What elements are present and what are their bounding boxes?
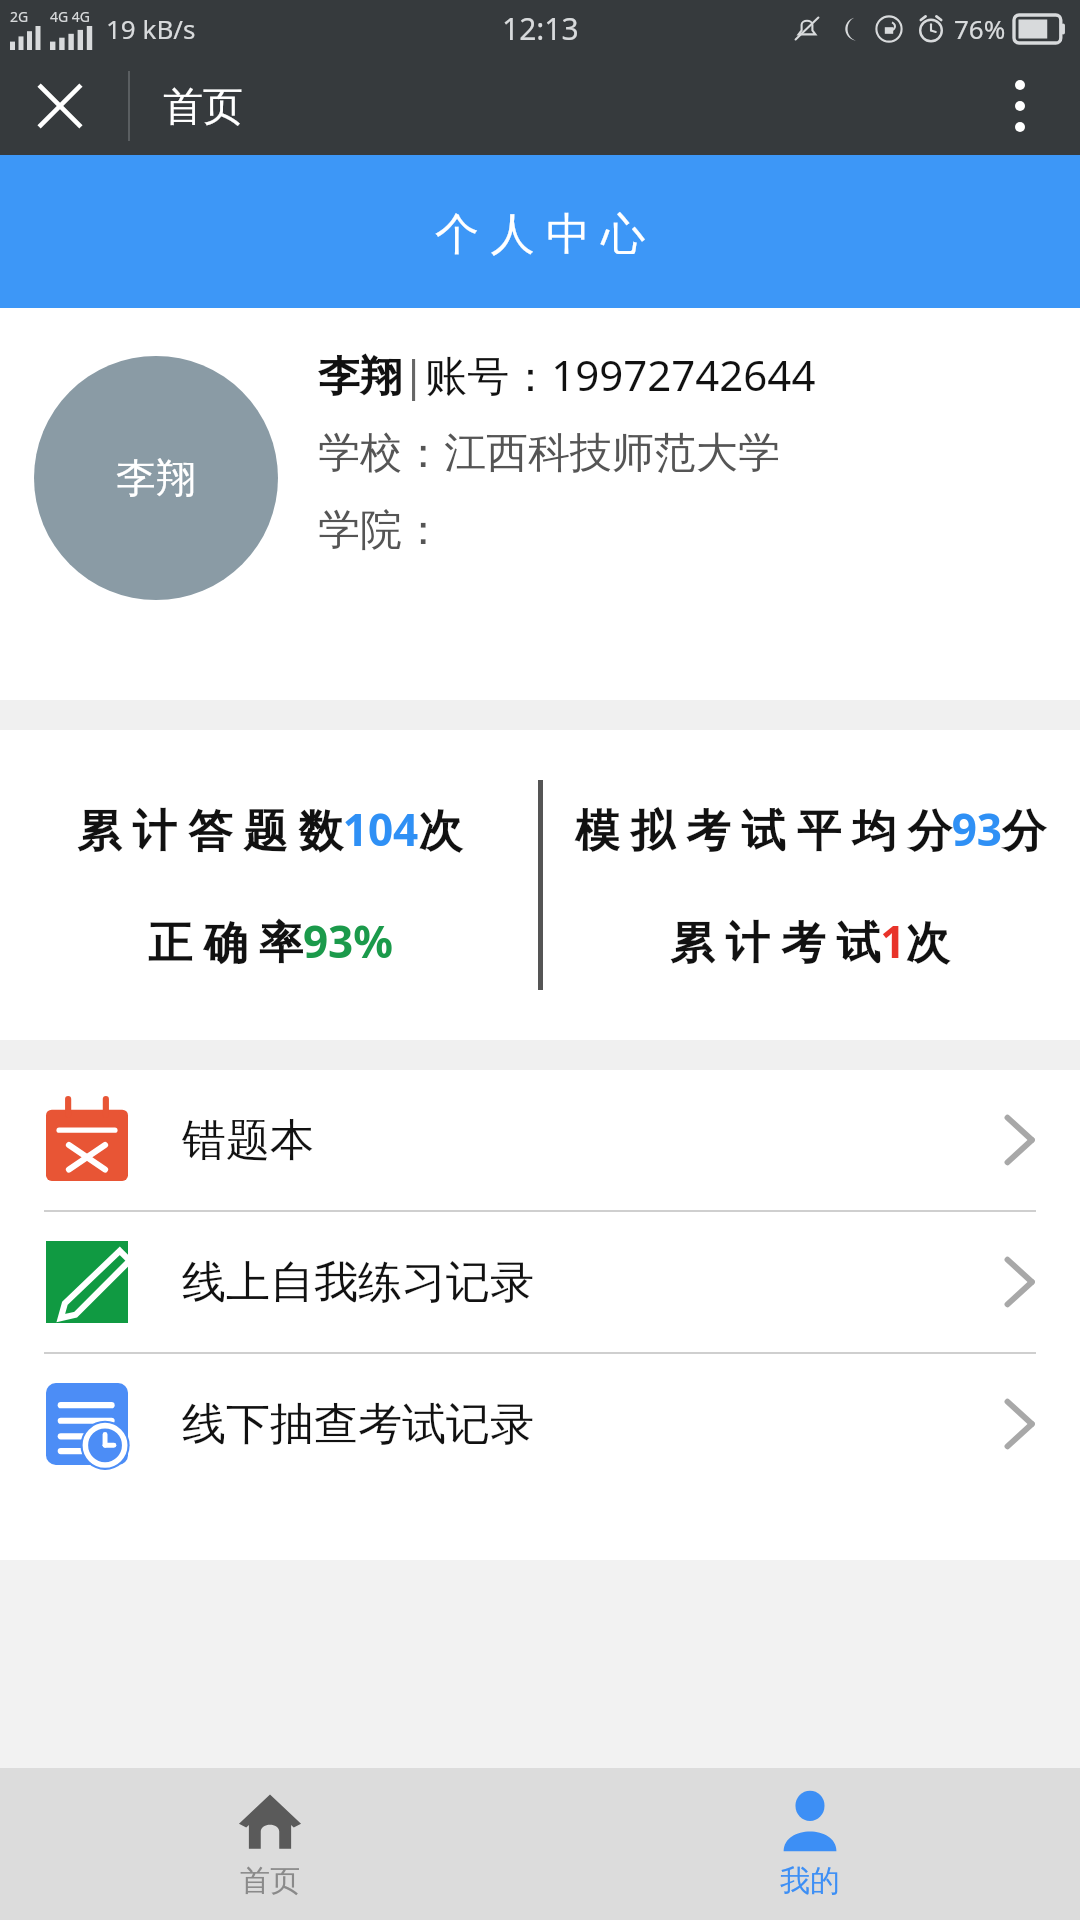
staticText: 线下抽查考试记录 (182, 1397, 534, 1452)
staticText: 正 确 率93% (148, 911, 393, 971)
staticText: 19 kB/s (106, 11, 196, 46)
staticText: 首页 (240, 1862, 300, 1900)
staticText: 累 计 考 试1次 (670, 911, 950, 971)
staticText: 12:13 (502, 8, 579, 49)
staticText: 学校：江西科技师范大学 (318, 427, 780, 480)
button[interactable]: 错题本 (0, 1070, 1080, 1210)
staticText: 李翔|账号：19972742644 (318, 346, 816, 403)
staticText: 线上自我练习记录 (182, 1255, 534, 1310)
staticText: 学院： (318, 504, 444, 557)
button[interactable]: More options (980, 66, 1060, 146)
button[interactable]: 李翔 (0, 308, 1080, 700)
button[interactable]: 我的 (540, 1768, 1080, 1920)
staticText: 2G (10, 7, 29, 26)
staticText: 李翔 (116, 453, 196, 503)
staticText: 首页 (163, 81, 243, 131)
button[interactable]: 线下抽查考试记录 (0, 1354, 1080, 1494)
staticText: 累 计 答 题 数104次 (77, 799, 463, 859)
staticText: 我的 (780, 1862, 840, 1900)
button[interactable]: Close (18, 64, 102, 148)
staticText: 4G 4G (50, 7, 91, 26)
staticText: 76% (954, 11, 1006, 46)
button[interactable]: 线上自我练习记录 (0, 1212, 1080, 1352)
button[interactable]: 首页 (0, 1768, 540, 1920)
staticText: 个 人 中 心 (435, 202, 646, 262)
staticText: 错题本 (182, 1113, 314, 1168)
staticText: 模 拟 考 试 平 均 分93分 (575, 799, 1046, 859)
